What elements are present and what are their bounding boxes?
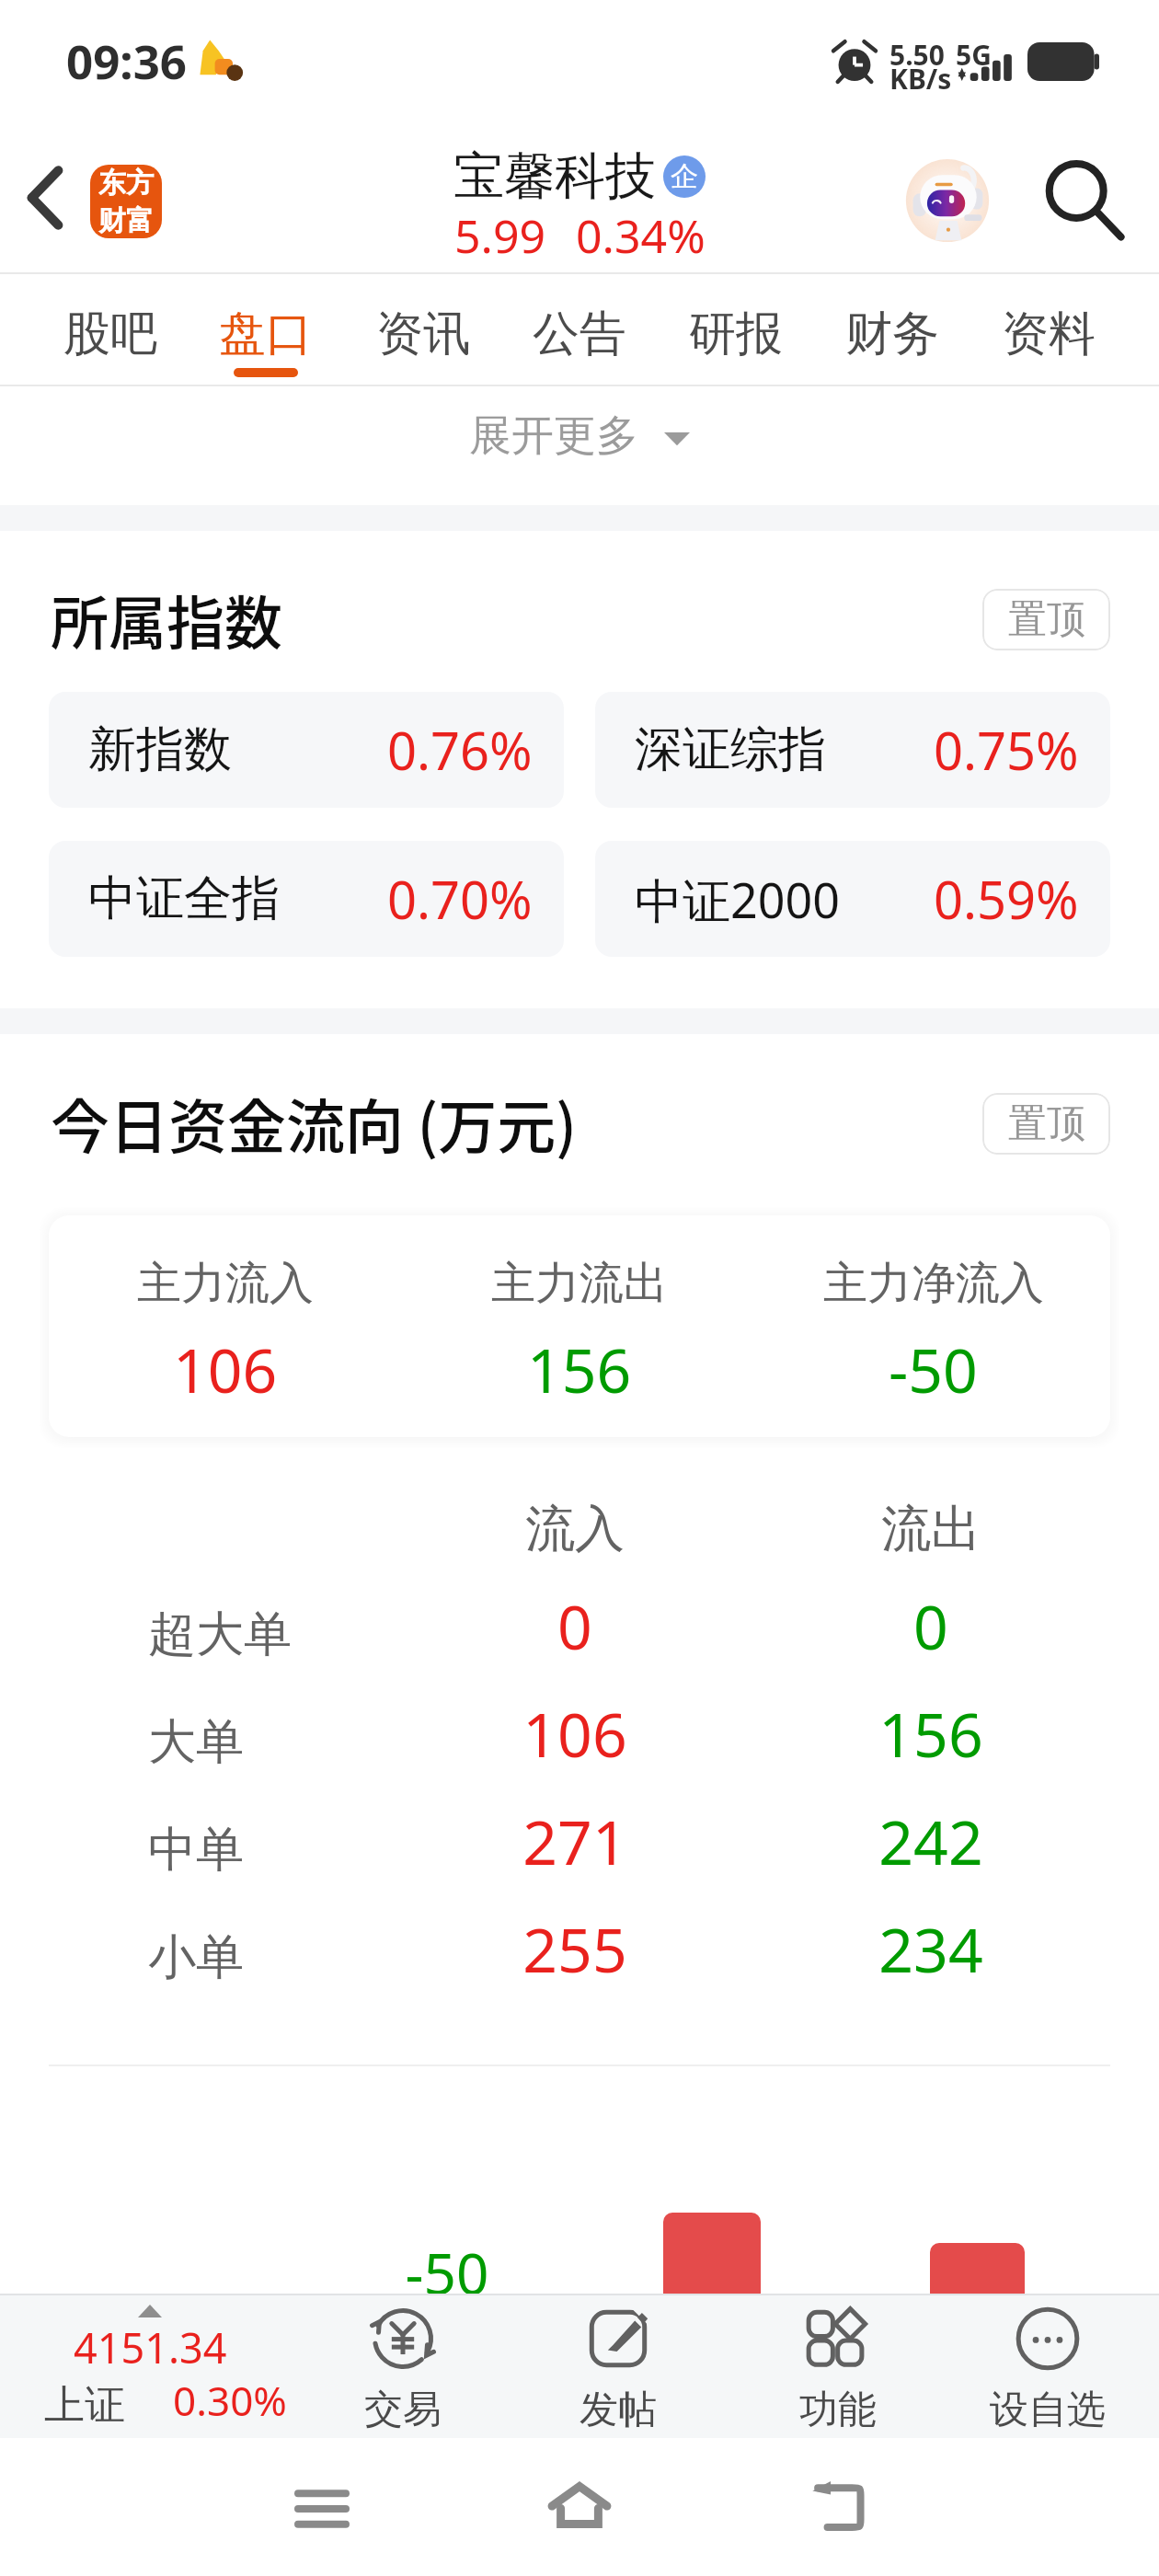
staticText: 股吧: [63, 305, 157, 363]
staticText: 0.75%: [934, 715, 1079, 785]
button[interactable]: 中证2000: [595, 841, 1110, 957]
button[interactable]: 超大单: [0, 1578, 1159, 1685]
staticText: 展开更多: [469, 409, 638, 463]
staticText: 置顶: [1008, 1099, 1085, 1148]
staticText: 主力流入: [137, 1256, 314, 1311]
staticText: -50: [889, 1328, 978, 1410]
staticText: 流出: [816, 1498, 1046, 1560]
button[interactable]: 主页: [534, 2459, 625, 2551]
button[interactable]: 返回: [2, 155, 88, 241]
staticText: 盘口: [219, 305, 313, 363]
staticText: 所属指数: [51, 577, 282, 661]
staticText: 置顶: [1008, 595, 1085, 644]
staticText: 东方: [98, 166, 154, 201]
staticText: 0: [460, 1584, 690, 1667]
button[interactable]: 新指数: [49, 692, 564, 808]
staticText: 中证全指: [88, 868, 280, 929]
staticText: 财务: [845, 305, 939, 363]
staticText: 234: [816, 1907, 1046, 1990]
staticText: 研报: [689, 305, 783, 363]
staticText: 4151.34: [74, 2319, 227, 2375]
button[interactable]: 中单: [0, 1793, 1159, 1901]
staticText: 公告: [533, 305, 626, 363]
button[interactable]: 盘口: [189, 276, 343, 385]
staticText: 发帖: [579, 2386, 657, 2434]
button[interactable]: 发帖: [512, 2295, 724, 2438]
staticText: 资讯: [376, 305, 470, 363]
staticText: 156: [527, 1328, 632, 1410]
button[interactable]: 资料: [971, 276, 1126, 385]
button[interactable]: 公告: [502, 276, 657, 385]
staticText: 271: [460, 1800, 690, 1882]
button[interactable]: 搜索: [1037, 153, 1132, 248]
button[interactable]: 股吧: [33, 276, 188, 385]
button[interactable]: 小单: [0, 1901, 1159, 2008]
button[interactable]: 智能助手: [901, 155, 993, 247]
button[interactable]: 东方财富: [90, 165, 162, 238]
staticText: 255: [460, 1907, 690, 1990]
staticText: 主力流出: [491, 1256, 668, 1311]
staticText: 106: [460, 1692, 690, 1775]
staticText: 今日资金流向 (万元): [51, 1080, 577, 1166]
staticText: 上证: [44, 2380, 125, 2431]
staticText: -50: [369, 2234, 525, 2311]
button[interactable]: 资讯: [346, 276, 500, 385]
staticText: 0: [816, 1584, 1046, 1667]
staticText: 5G: [956, 36, 992, 74]
staticText: 0.70%: [387, 864, 533, 934]
button[interactable]: 财务: [815, 276, 970, 385]
staticText: 大单: [148, 1712, 244, 1773]
staticText: 流入: [460, 1498, 690, 1560]
staticText: 0.76%: [387, 715, 533, 785]
staticText: 09:36: [66, 29, 188, 92]
button[interactable]: 中证全指: [49, 841, 564, 957]
button[interactable]: 置顶: [982, 1093, 1110, 1155]
button[interactable]: 研报: [659, 276, 813, 385]
staticText: 主力净流入: [823, 1256, 1044, 1311]
button[interactable]: 最近任务: [276, 2463, 368, 2555]
staticText: 5.99: [454, 204, 546, 267]
button[interactable]: 交易: [297, 2295, 509, 2438]
staticText: 中单: [148, 1820, 244, 1880]
staticText: 交易: [364, 2386, 442, 2434]
staticText: 0.30%: [173, 2373, 287, 2428]
staticText: 资料: [1002, 305, 1096, 363]
staticText: 0.59%: [934, 864, 1079, 934]
staticText: 超大单: [148, 1604, 292, 1665]
staticText: KB/s: [889, 60, 952, 98]
button[interactable]: 展开更多: [0, 376, 1159, 495]
staticText: 0.34%: [576, 204, 706, 267]
staticText: 242: [816, 1800, 1046, 1882]
staticText: 财富: [98, 203, 154, 238]
staticText: 企: [671, 159, 698, 194]
staticText: 宝馨科技: [453, 144, 656, 208]
staticText: 中证2000: [635, 867, 840, 932]
button[interactable]: 深证综指: [595, 692, 1110, 808]
button[interactable]: 功能: [732, 2295, 944, 2438]
staticText: 小单: [148, 1927, 244, 1988]
staticText: 功能: [799, 2386, 877, 2434]
staticText: 新指数: [88, 719, 232, 780]
staticText: 156: [816, 1692, 1046, 1775]
staticText: 设自选: [990, 2386, 1106, 2434]
button[interactable]: 4151.34: [17, 2295, 287, 2438]
staticText: 5.50: [889, 36, 945, 74]
button[interactable]: 大单: [0, 1685, 1159, 1793]
staticText: 深证综指: [635, 719, 826, 780]
button[interactable]: 返回: [791, 2459, 883, 2551]
staticText: 106: [173, 1328, 278, 1410]
button[interactable]: 置顶: [982, 589, 1110, 650]
button[interactable]: 设自选: [942, 2295, 1153, 2438]
